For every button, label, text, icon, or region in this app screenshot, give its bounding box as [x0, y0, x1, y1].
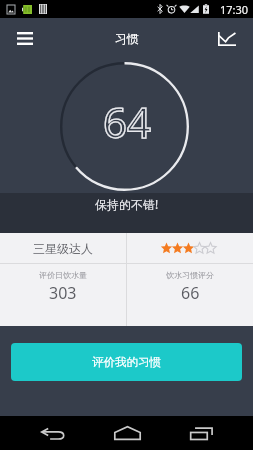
- staticText: 饮水习惯评分: [166, 270, 214, 280]
- staticText: 66: [181, 282, 200, 304]
- staticText: 303: [49, 282, 77, 304]
- button[interactable]: [127, 233, 253, 263]
- staticText: 64: [103, 93, 152, 150]
- staticText: 习惯: [115, 31, 139, 46]
- staticText: 三星级达人: [33, 241, 93, 256]
- button[interactable]: 饮水习惯评分: [127, 264, 253, 326]
- button[interactable]: Open navigation menu: [0, 18, 50, 58]
- staticText: 评价日饮水量: [39, 270, 87, 280]
- button[interactable]: 评价我的习惯: [11, 343, 242, 381]
- staticText: 评价我的习惯: [92, 355, 161, 369]
- staticText: 17:30: [220, 2, 249, 17]
- button[interactable]: 评价日饮水量: [0, 264, 126, 326]
- button[interactable]: Back: [21, 416, 85, 450]
- button[interactable]: 三星级达人: [0, 233, 126, 263]
- button[interactable]: Statistics: [201, 18, 253, 58]
- button[interactable]: Recent apps: [169, 416, 233, 450]
- staticText: 保持的不错!: [95, 196, 159, 212]
- button[interactable]: Home: [95, 416, 159, 450]
